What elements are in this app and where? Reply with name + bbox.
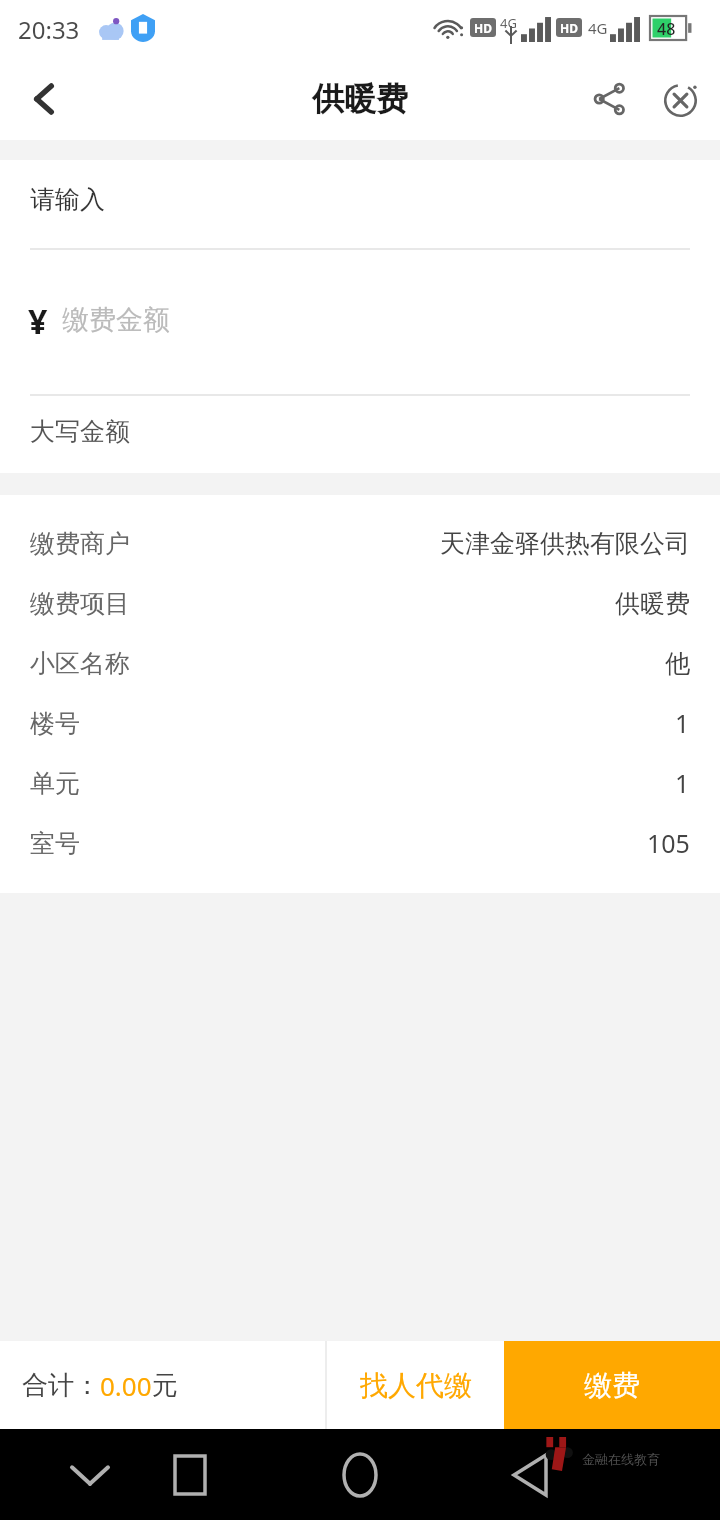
button[interactable]: Home xyxy=(288,1429,432,1520)
button[interactable]: 缴费商户 xyxy=(0,513,720,573)
staticText: 1 xyxy=(675,766,690,800)
staticText: 他 xyxy=(665,648,690,679)
staticText: 4G xyxy=(500,14,517,32)
staticText: 楼号 xyxy=(30,708,80,739)
staticText: 供暖费 xyxy=(312,79,408,119)
staticText: 金融在线教育 xyxy=(582,1451,660,1467)
button[interactable]: Close xyxy=(646,58,718,140)
button[interactable]: Back xyxy=(6,58,82,140)
button[interactable]: 室号 xyxy=(0,813,720,873)
staticText: 缴费项目 xyxy=(30,588,130,619)
staticText: 缴费金额 xyxy=(62,303,170,337)
staticText: 1 xyxy=(675,706,690,740)
staticText: 供暖费 xyxy=(615,588,690,619)
staticText: 室号 xyxy=(30,828,80,859)
staticText: 0.00 xyxy=(100,1368,152,1403)
staticText: 缴费 xyxy=(584,1368,640,1403)
staticText: HD xyxy=(560,20,578,36)
staticText: 元 xyxy=(152,1369,178,1402)
staticText: 105 xyxy=(647,826,690,860)
staticText: 4G xyxy=(588,18,608,38)
button[interactable]: Back xyxy=(458,1429,602,1520)
button[interactable]: 单元 xyxy=(0,753,720,813)
button[interactable]: 找人代缴 xyxy=(327,1341,504,1429)
button[interactable]: Recent apps xyxy=(118,1429,262,1520)
button[interactable]: Hide keyboard xyxy=(18,1429,162,1520)
staticText: 缴费商户 xyxy=(30,528,130,559)
staticText: 单元 xyxy=(30,768,80,799)
staticText: 48 xyxy=(657,18,676,40)
staticText: 小区名称 xyxy=(30,648,130,679)
staticText: ¥ xyxy=(28,298,48,344)
staticText: 请输入 xyxy=(30,184,105,215)
staticText: 天津金驿供热有限公司 xyxy=(440,528,690,559)
staticText: 合计： xyxy=(22,1369,100,1402)
button[interactable]: 缴费项目 xyxy=(0,573,720,633)
staticText: 大写金额 xyxy=(30,416,130,447)
staticText: 20:33 xyxy=(18,13,80,46)
button[interactable]: 楼号 xyxy=(0,693,720,753)
button[interactable]: 小区名称 xyxy=(0,633,720,693)
staticText: HD xyxy=(474,20,492,36)
button[interactable]: 缴费 xyxy=(504,1341,720,1429)
button[interactable]: Share xyxy=(574,58,646,140)
staticText: 找人代缴 xyxy=(360,1368,472,1403)
